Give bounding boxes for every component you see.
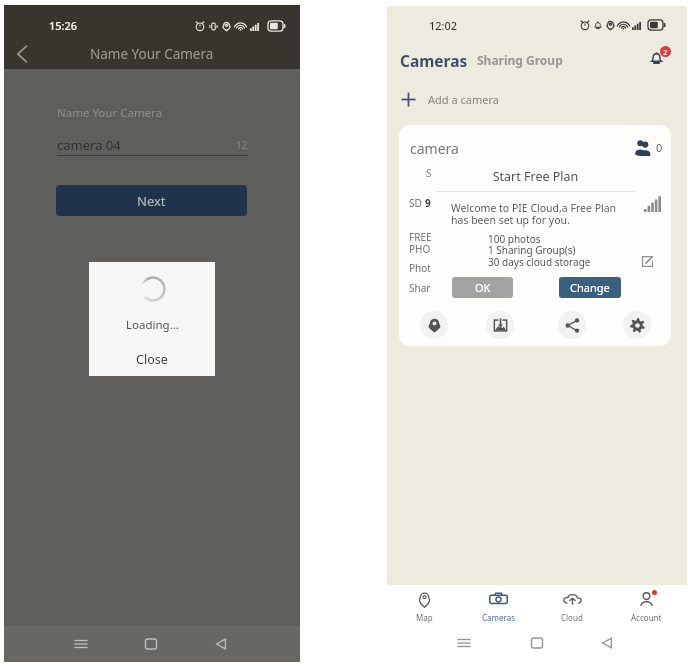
staticText: 12:02 [429, 18, 458, 33]
button[interactable]: Recents [70, 633, 92, 655]
staticText: 15:26 [49, 18, 78, 33]
button[interactable]: Cameras [400, 50, 468, 71]
button[interactable]: Close [122, 349, 182, 370]
staticText: Name Your Camera [57, 105, 163, 121]
staticText: 9 [425, 196, 431, 210]
button[interactable]: Sharing Group [477, 52, 563, 68]
button[interactable]: Account [613, 585, 679, 633]
staticText: Start Free Plan [433, 168, 638, 185]
button[interactable]: Map [391, 585, 457, 633]
button[interactable]: Next [56, 185, 247, 216]
staticText: 100 photos 1 Sharing Group(s) 30 days cl… [488, 232, 591, 269]
button[interactable]: Notifications [642, 44, 671, 73]
button[interactable]: Home [140, 633, 162, 655]
staticText: Cloud [561, 612, 583, 623]
button[interactable]: Location [420, 311, 448, 339]
staticText: 2 [663, 47, 668, 57]
button[interactable]: Home [526, 632, 548, 654]
staticText: Close [136, 351, 168, 368]
button[interactable]: Back [596, 632, 618, 654]
staticText: Welcome to PIE Cloud,a Free Plan has bee… [451, 201, 617, 227]
staticText: 12 [236, 138, 248, 152]
staticText: Loading... [126, 317, 179, 333]
button[interactable]: Back [9, 41, 35, 67]
button[interactable]: Settings [623, 311, 651, 339]
staticText: Phot [409, 261, 431, 275]
button[interactable]: Change [559, 277, 621, 298]
button[interactable]: Add a camera [387, 86, 687, 112]
staticText: Name Your Camera [90, 45, 214, 63]
staticText: 0 [656, 140, 663, 155]
staticText: S [426, 166, 432, 180]
staticText: Shar [409, 281, 431, 295]
staticText: Change [570, 280, 610, 295]
staticText: Add a camera [428, 92, 499, 107]
staticText: Map [416, 612, 433, 623]
staticText: OK [475, 280, 491, 295]
staticText: camera 04 [57, 136, 121, 154]
staticText: SD [409, 196, 425, 210]
staticText: Sharing Group [477, 52, 563, 68]
staticText: Next [137, 192, 166, 210]
button[interactable]: Gallery [486, 311, 514, 339]
staticText: Cameras [400, 50, 468, 71]
button[interactable]: Back [210, 633, 232, 655]
button[interactable]: Cloud [539, 585, 605, 633]
button[interactable]: OK [452, 277, 513, 298]
button[interactable]: Recents [453, 632, 475, 654]
staticText: Cameras [482, 612, 515, 623]
button[interactable]: Share [558, 311, 586, 339]
staticText: FREE PHO [409, 230, 432, 256]
button[interactable]: Cameras [465, 585, 531, 633]
staticText: Account [631, 612, 662, 623]
staticText: camera [410, 139, 459, 158]
